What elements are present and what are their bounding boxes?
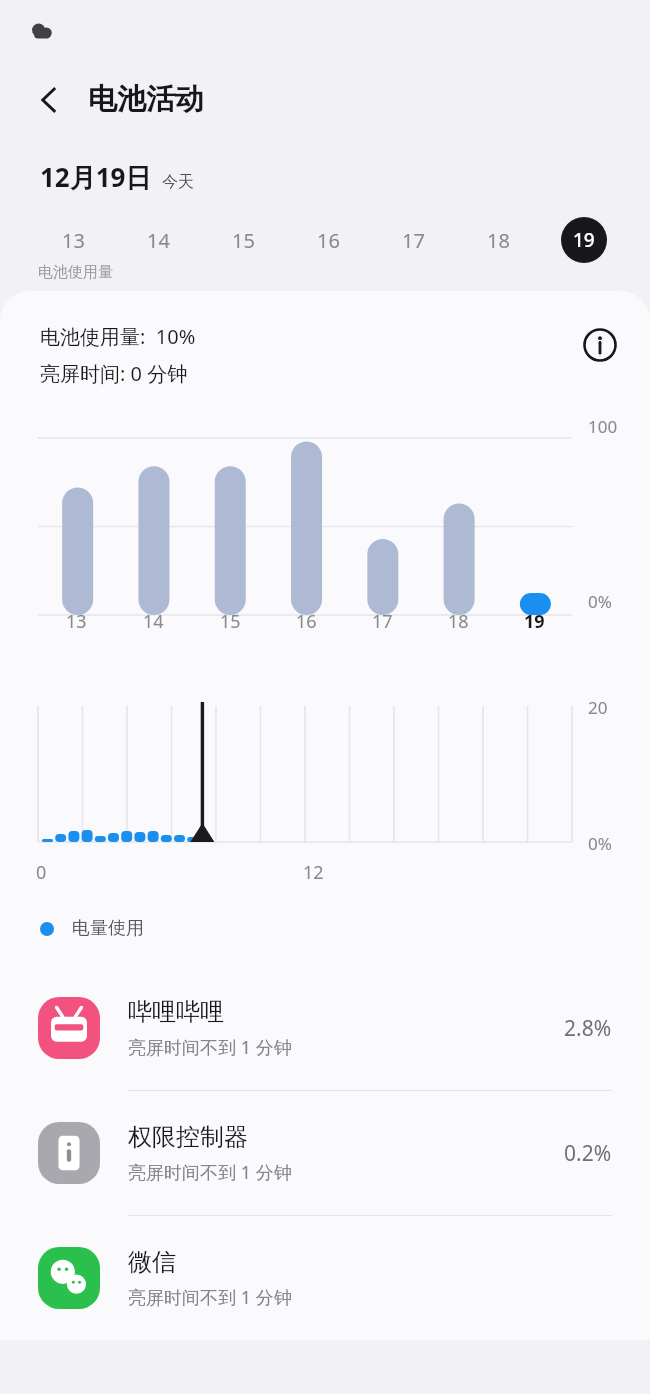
staticText: 14 xyxy=(143,609,164,634)
staticText: 0% xyxy=(588,832,612,855)
staticText: 17 xyxy=(372,609,393,634)
staticText: 18 xyxy=(448,609,469,634)
button[interactable]: 16 xyxy=(286,215,371,265)
staticText: 19 xyxy=(573,227,595,253)
staticText: 电池使用量 xyxy=(38,263,113,282)
staticText: 15 xyxy=(232,227,255,254)
staticText: 19 xyxy=(524,609,545,634)
button[interactable]: 哔哩哔哩 xyxy=(0,966,650,1090)
staticText: 亮屏时间不到 1 分钟 xyxy=(128,1035,292,1060)
button[interactable]: 13 xyxy=(30,215,116,265)
button[interactable]: Back xyxy=(26,77,72,123)
staticText: 16 xyxy=(296,609,317,634)
staticText: 0.2% xyxy=(564,1139,612,1168)
staticText: 亮屏时间不到 1 分钟 xyxy=(128,1285,292,1310)
staticText: 亮屏时间不到 1 分钟 xyxy=(128,1160,292,1185)
staticText: 电量使用 xyxy=(72,917,144,940)
staticText: 12 xyxy=(303,860,324,885)
button[interactable]: 17 xyxy=(371,215,456,265)
staticText: 12月19日 xyxy=(40,159,152,195)
staticText: 今天 xyxy=(162,172,194,192)
staticText: 18 xyxy=(487,227,510,254)
staticText: 15 xyxy=(220,609,241,634)
staticText: 13 xyxy=(62,227,85,254)
staticText: 20 xyxy=(588,696,608,719)
button[interactable]: 14 xyxy=(116,215,201,265)
staticText: 2.8% xyxy=(564,1014,612,1043)
staticText: 16 xyxy=(317,227,340,254)
staticText: 0 xyxy=(36,860,47,885)
staticText: 微信 xyxy=(128,1247,176,1277)
staticText: 电池活动 xyxy=(88,81,204,118)
staticText: 亮屏时间: 0 分钟 xyxy=(40,360,188,387)
staticText: 0% xyxy=(588,590,612,613)
button[interactable]: Info xyxy=(578,323,622,367)
staticText: 权限控制器 xyxy=(128,1122,248,1152)
button[interactable]: 19 xyxy=(541,215,626,265)
staticText: 14 xyxy=(147,227,170,254)
button[interactable]: 权限控制器 xyxy=(0,1091,650,1215)
staticText: 电池使用量: 10% xyxy=(40,323,196,350)
button[interactable]: 15 xyxy=(201,215,286,265)
staticText: 13 xyxy=(66,609,87,634)
button[interactable]: 微信 xyxy=(0,1216,650,1340)
staticText: 哔哩哔哩 xyxy=(128,997,224,1027)
staticText: 17 xyxy=(402,227,425,254)
button[interactable]: 18 xyxy=(456,215,541,265)
staticText: 100 xyxy=(588,415,618,438)
